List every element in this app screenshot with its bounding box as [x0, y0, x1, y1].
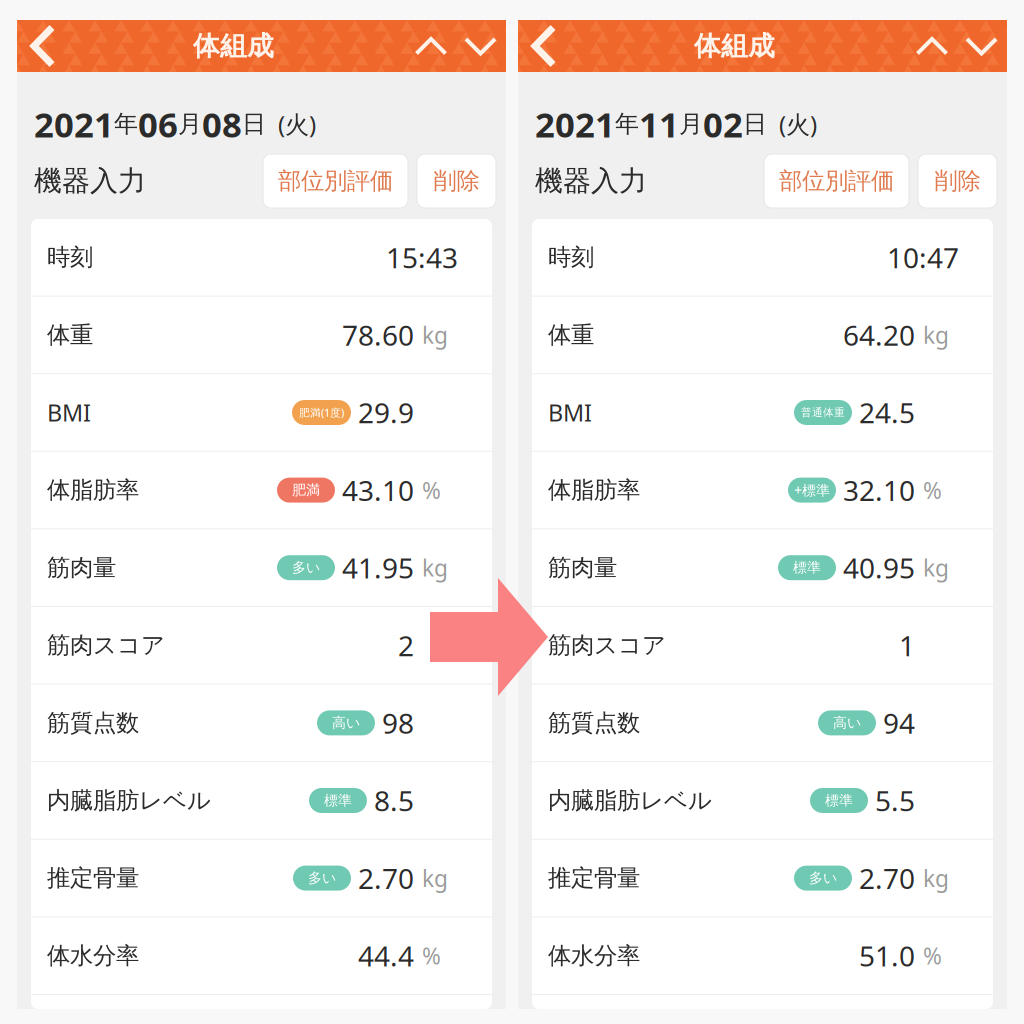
- staticText: kg: [422, 319, 448, 350]
- staticText: 29.9: [358, 393, 414, 431]
- staticText: %: [422, 940, 441, 971]
- staticText: BMI: [548, 397, 592, 428]
- staticText: 08: [202, 100, 242, 148]
- staticText: 体重: [47, 320, 93, 350]
- staticText: 時刻: [548, 243, 594, 272]
- staticText: 内臓脂肪レベル: [47, 786, 211, 815]
- staticText: 標準: [324, 792, 352, 809]
- staticText: kg: [923, 552, 949, 583]
- staticText: (火): [767, 108, 817, 140]
- staticText: 41.95: [342, 549, 414, 587]
- button[interactable]: Previous record: [401, 20, 461, 72]
- staticText: 51.0: [859, 937, 915, 975]
- staticText: 内臓脂肪レベル: [548, 786, 712, 815]
- staticText: kg: [923, 319, 949, 350]
- staticText: 体組成: [193, 29, 274, 63]
- staticText: 推定骨量: [47, 863, 139, 893]
- staticText: 日: [743, 109, 767, 139]
- staticText: 機器入力: [34, 163, 146, 199]
- staticText: %: [923, 475, 942, 506]
- staticText: 筋肉スコア: [47, 631, 165, 660]
- staticText: 筋肉量: [47, 553, 116, 582]
- staticText: 月: [178, 109, 202, 139]
- staticText: 肥満(1度): [299, 405, 344, 420]
- staticText: 削除: [433, 166, 479, 196]
- staticText: 02: [703, 100, 743, 148]
- staticText: 部位別評価: [278, 166, 393, 196]
- staticText: 10:47: [887, 238, 959, 276]
- staticText: 推定骨量: [548, 863, 640, 893]
- staticText: 削除: [934, 166, 980, 196]
- staticText: 高い: [332, 714, 360, 732]
- staticText: 時刻: [47, 243, 93, 272]
- staticText: 8.5: [374, 781, 414, 819]
- staticText: 体水分率: [548, 941, 640, 970]
- staticText: 筋質点数: [47, 708, 139, 738]
- staticText: 筋質点数: [548, 708, 640, 738]
- staticText: 標準: [793, 559, 821, 576]
- staticText: (火): [266, 108, 316, 140]
- staticText: 1: [899, 626, 915, 664]
- staticText: 年: [615, 109, 639, 139]
- staticText: 2.70: [358, 859, 414, 897]
- staticText: 多い: [308, 869, 336, 887]
- staticText: 2021: [34, 100, 114, 148]
- staticText: 筋肉スコア: [548, 631, 666, 660]
- staticText: 2.70: [859, 859, 915, 897]
- staticText: 体脂肪率: [47, 475, 139, 505]
- staticText: 2021: [535, 100, 615, 148]
- staticText: 肥満: [292, 481, 320, 499]
- button[interactable]: Next record: [461, 20, 500, 72]
- staticText: 11: [639, 100, 679, 148]
- staticText: 15:43: [386, 238, 458, 276]
- staticText: 06: [138, 100, 178, 148]
- button[interactable]: Back: [20, 20, 66, 72]
- staticText: 体組成: [694, 29, 775, 63]
- staticText: 多い: [292, 559, 320, 576]
- staticText: 5.5: [875, 781, 915, 819]
- staticText: 年: [114, 109, 138, 139]
- staticText: 2: [398, 626, 414, 664]
- button[interactable]: 部位別評価: [764, 154, 909, 208]
- staticText: BMI: [47, 397, 91, 428]
- button[interactable]: Previous record: [902, 20, 962, 72]
- staticText: 32.10: [843, 471, 915, 509]
- staticText: 月: [679, 109, 703, 139]
- staticText: kg: [923, 863, 949, 894]
- staticText: 44.4: [358, 937, 414, 975]
- button[interactable]: Next record: [962, 20, 1001, 72]
- button[interactable]: Back: [521, 20, 567, 72]
- staticText: 24.5: [859, 393, 915, 431]
- staticText: 高い: [833, 714, 861, 732]
- staticText: 日: [242, 109, 266, 139]
- staticText: 多い: [809, 869, 837, 887]
- staticText: 機器入力: [535, 163, 647, 199]
- staticText: 64.20: [843, 316, 915, 354]
- button[interactable]: 削除: [918, 154, 997, 208]
- staticText: 40.95: [843, 549, 915, 587]
- staticText: 体重: [548, 320, 594, 350]
- staticText: kg: [422, 863, 448, 894]
- staticText: 43.10: [342, 471, 414, 509]
- staticText: %: [422, 475, 441, 506]
- staticText: 標準: [825, 792, 853, 809]
- staticText: 体脂肪率: [548, 475, 640, 505]
- staticText: +標準: [794, 481, 830, 500]
- staticText: 94: [883, 704, 915, 742]
- staticText: 普通体重: [801, 406, 845, 419]
- button[interactable]: 削除: [417, 154, 496, 208]
- staticText: 98: [382, 704, 414, 742]
- staticText: 体水分率: [47, 941, 139, 970]
- button[interactable]: 部位別評価: [263, 154, 408, 208]
- staticText: %: [923, 940, 942, 971]
- staticText: kg: [422, 552, 448, 583]
- staticText: 78.60: [342, 316, 414, 354]
- staticText: 筋肉量: [548, 553, 617, 582]
- staticText: 部位別評価: [779, 166, 894, 196]
